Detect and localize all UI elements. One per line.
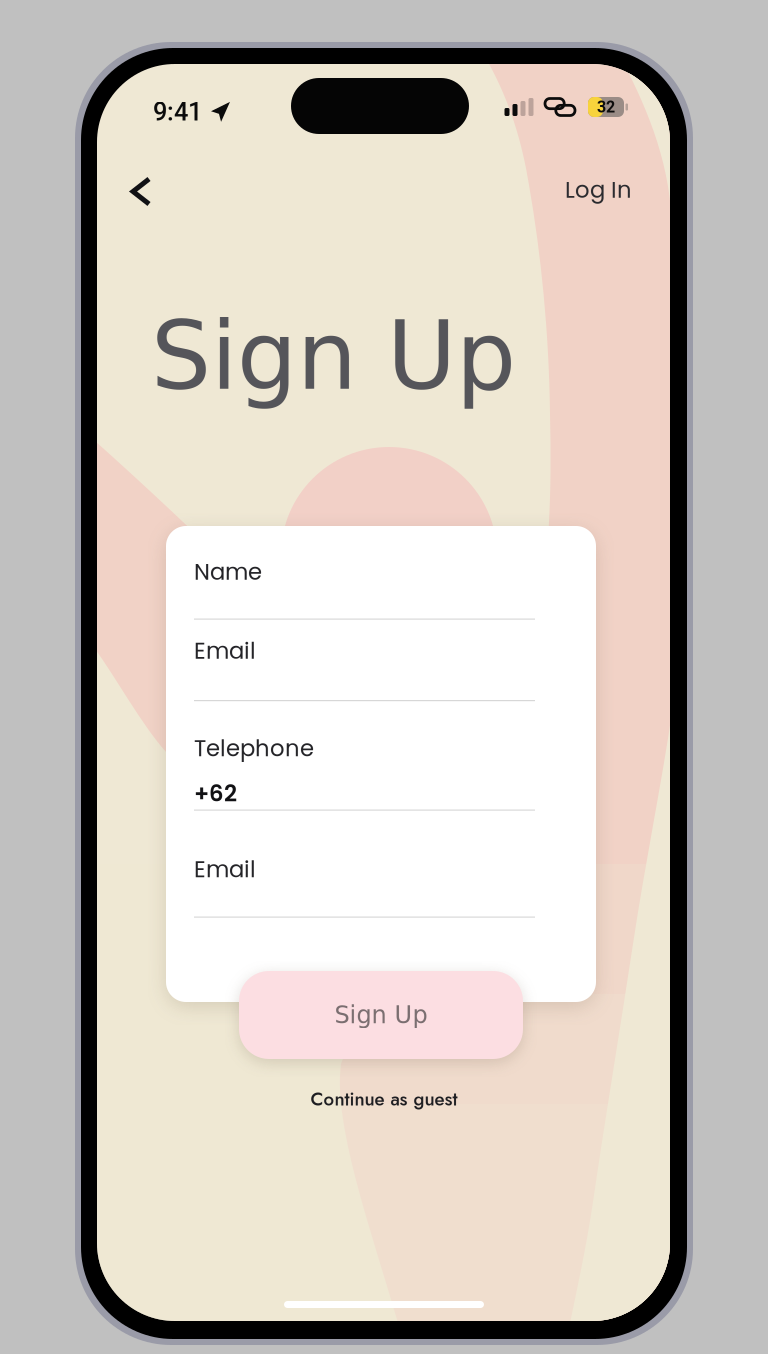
staticText: Continue as guest [310, 1085, 457, 1112]
staticText: Name [194, 556, 262, 588]
button[interactable]: Sign Up [239, 971, 523, 1059]
staticText: +62 [194, 777, 237, 809]
staticText: Sign Up [334, 1001, 427, 1029]
staticText: Log In [565, 174, 632, 206]
staticText: Telephone [194, 732, 314, 764]
button[interactable]: Back [119, 165, 163, 218]
staticText: 9:41 [153, 97, 202, 127]
staticText: Email [194, 635, 256, 667]
button[interactable]: Log In [551, 163, 646, 217]
staticText: 32 [597, 98, 615, 116]
staticText: Email [194, 853, 256, 885]
button[interactable]: Continue as guest [274, 1082, 494, 1116]
staticText: Sign Up [151, 301, 516, 411]
